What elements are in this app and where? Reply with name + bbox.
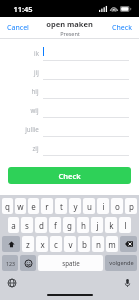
button[interactable]: o xyxy=(111,198,123,214)
staticText: zij xyxy=(32,144,39,152)
button[interactable]: Dictation xyxy=(121,277,133,289)
button[interactable]: Shift xyxy=(2,236,20,252)
staticText: z xyxy=(26,239,30,250)
staticText: hij xyxy=(31,87,39,95)
staticText: o xyxy=(115,201,120,212)
staticText: h xyxy=(81,220,86,231)
staticText: Check xyxy=(58,171,81,181)
button[interactable]: i xyxy=(97,198,109,214)
button[interactable]: g xyxy=(63,217,75,233)
button[interactable]: t xyxy=(55,198,67,214)
staticText: f xyxy=(54,220,57,231)
staticText: v xyxy=(68,239,73,250)
staticText: open maken xyxy=(46,19,93,29)
staticText: m xyxy=(108,239,116,250)
staticText: t xyxy=(60,201,63,212)
staticText: r xyxy=(45,201,49,212)
button[interactable]: f xyxy=(49,217,61,233)
button[interactable]: 123 xyxy=(2,255,18,271)
button[interactable]: k xyxy=(105,217,117,233)
staticText: l xyxy=(124,220,127,231)
button[interactable]: r xyxy=(41,198,53,214)
staticText: g xyxy=(67,220,72,231)
button[interactable]: Emoji xyxy=(20,255,36,271)
staticText: u xyxy=(87,201,92,212)
button[interactable]: Change keyboard language xyxy=(6,277,18,289)
button[interactable]: y xyxy=(69,198,81,214)
button[interactable]: n xyxy=(92,236,104,252)
staticText: k xyxy=(109,220,114,231)
button[interactable]: jullie xyxy=(0,120,139,137)
button[interactable]: ik xyxy=(0,44,139,61)
staticText: j xyxy=(96,220,99,231)
button[interactable]: d xyxy=(35,217,47,233)
button[interactable]: w xyxy=(15,198,26,214)
button[interactable]: c xyxy=(50,236,62,252)
staticText: 11:45 xyxy=(13,4,33,14)
staticText: e xyxy=(31,201,36,212)
button[interactable]: j xyxy=(91,217,103,233)
button[interactable]: Cancel xyxy=(0,19,36,37)
staticText: 123 xyxy=(6,260,15,267)
staticText: wij xyxy=(30,106,39,114)
staticText: jullie xyxy=(25,125,39,133)
button[interactable]: Check xyxy=(8,167,131,184)
staticText: p xyxy=(129,201,134,212)
staticText: w xyxy=(17,201,24,212)
staticText: Cancel xyxy=(7,23,29,33)
button[interactable]: volgende xyxy=(105,255,137,271)
button[interactable]: m xyxy=(106,236,118,252)
button[interactable]: u xyxy=(83,198,95,214)
button[interactable]: v xyxy=(64,236,76,252)
staticText: a xyxy=(11,220,16,231)
button[interactable]: jij xyxy=(0,63,139,80)
button[interactable]: e xyxy=(28,198,39,214)
staticText: n xyxy=(96,239,101,250)
staticText: s xyxy=(25,220,29,231)
button[interactable]: wij xyxy=(0,101,139,118)
staticText: Present xyxy=(60,30,80,37)
button[interactable]: Backspace xyxy=(120,236,137,252)
button[interactable]: l xyxy=(119,217,131,233)
staticText: i xyxy=(102,201,105,212)
button[interactable]: q xyxy=(2,198,13,214)
staticText: x xyxy=(40,239,45,250)
button[interactable]: p xyxy=(125,198,137,214)
button[interactable]: zij xyxy=(0,139,139,156)
button[interactable]: s xyxy=(21,217,33,233)
staticText: ik xyxy=(34,49,39,57)
staticText: spatie xyxy=(62,259,80,267)
staticText: b xyxy=(82,239,87,250)
button[interactable]: z xyxy=(22,236,34,252)
button[interactable]: b xyxy=(78,236,90,252)
staticText: d xyxy=(39,220,44,231)
button[interactable]: hij xyxy=(0,82,139,99)
staticText: y xyxy=(73,201,78,212)
button[interactable]: h xyxy=(77,217,89,233)
button[interactable]: Check xyxy=(105,19,139,37)
staticText: q xyxy=(5,201,10,212)
button[interactable]: spatie xyxy=(38,255,103,271)
button[interactable]: x xyxy=(36,236,48,252)
button[interactable]: a xyxy=(8,217,19,233)
staticText: jij xyxy=(34,68,39,76)
staticText: Check xyxy=(112,23,132,33)
staticText: c xyxy=(54,239,58,250)
staticText: volgende xyxy=(109,259,134,267)
